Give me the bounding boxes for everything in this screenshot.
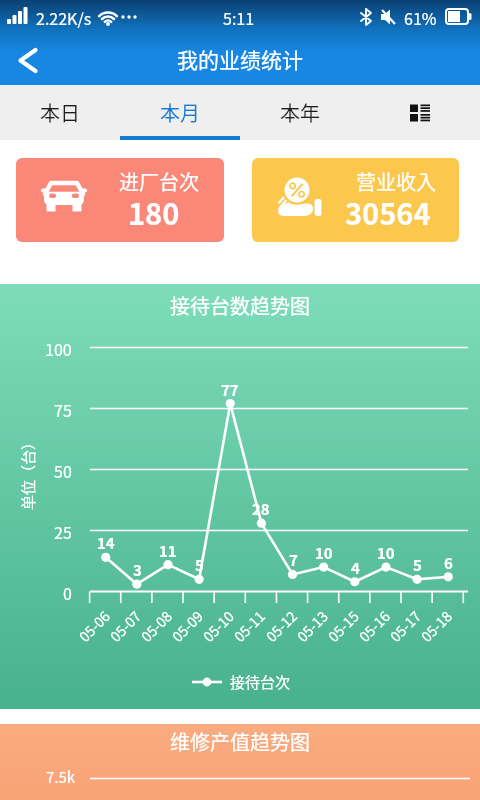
staticText: 5	[413, 554, 422, 576]
staticText: 10	[377, 542, 395, 564]
staticText: 05-08	[136, 606, 176, 646]
staticText: 61%	[404, 6, 437, 29]
staticText: 维修产值趋势图	[170, 727, 310, 756]
staticText: 单位（台）	[17, 434, 39, 510]
staticText: 7	[289, 549, 298, 571]
staticText: 05-12	[261, 606, 301, 646]
button[interactable]: 营业收入	[252, 158, 459, 242]
staticText: 本年	[280, 98, 320, 127]
staticText: 5:11	[223, 6, 255, 29]
staticText: 2.22K/s	[36, 6, 92, 29]
staticText: 5	[195, 554, 204, 576]
button[interactable]: 本日	[0, 85, 120, 140]
staticText: 25	[54, 520, 72, 543]
staticText: 11	[159, 540, 177, 562]
staticText: 7.5k	[46, 766, 76, 788]
staticText: 4	[351, 557, 360, 579]
staticText: 05-18	[416, 606, 456, 646]
staticText: 3	[133, 559, 142, 581]
staticText: 05-09	[167, 606, 207, 646]
staticText: 05-07	[105, 606, 145, 646]
staticText: 营业收入	[356, 167, 436, 196]
staticText: 75	[54, 398, 72, 421]
staticText: 0	[63, 581, 72, 604]
staticText: 30564	[345, 191, 431, 233]
staticText: 05-11	[229, 606, 269, 646]
staticText: 05-17	[385, 606, 425, 646]
staticText: 180	[128, 191, 180, 233]
staticText: 05-15	[323, 606, 363, 646]
staticText: 接待台数趋势图	[170, 291, 310, 320]
staticText: 100	[45, 337, 72, 360]
staticText: 接待台次	[230, 671, 291, 693]
staticText: 05-10	[198, 606, 238, 646]
staticText: 本日	[40, 98, 80, 127]
button[interactable]: 本月	[120, 85, 240, 140]
button[interactable]: 进厂台次	[16, 158, 224, 242]
button[interactable]: 本年	[240, 85, 360, 140]
staticText: 进厂台次	[119, 167, 199, 196]
staticText: 28	[252, 498, 270, 520]
staticText: 6	[444, 552, 453, 574]
staticText: 本月	[160, 98, 200, 127]
staticText: 05-13	[292, 606, 332, 646]
staticText: 50	[54, 459, 72, 482]
staticText: 14	[97, 532, 115, 554]
staticText: 我的业绩统计	[177, 44, 303, 74]
button[interactable]	[360, 85, 480, 140]
staticText: 77	[221, 379, 239, 401]
staticText: 05-06	[74, 606, 114, 646]
button[interactable]	[10, 40, 50, 80]
staticText: 05-16	[354, 606, 394, 646]
staticText: 10	[315, 542, 333, 564]
